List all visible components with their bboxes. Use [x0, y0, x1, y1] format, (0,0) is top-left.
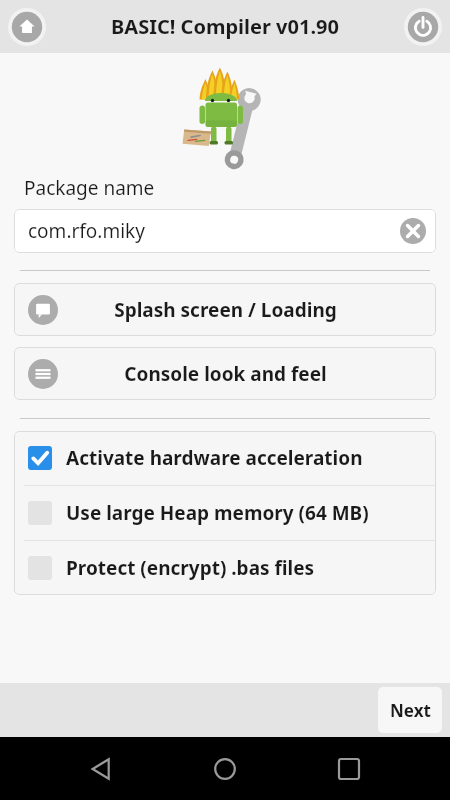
button[interactable]: Activate hardware acceleration — [14, 431, 436, 485]
button[interactable]: Use large Heap memory (64 MB) — [14, 486, 436, 540]
button[interactable]: Exit — [402, 6, 444, 48]
staticText: Package name — [24, 175, 155, 201]
staticText: Next — [390, 699, 431, 722]
button[interactable]: Protect (encrypt) .bas files — [14, 541, 436, 595]
staticText: Splash screen / Loading — [114, 297, 337, 323]
staticText: Use large Heap memory (64 MB) — [66, 500, 369, 526]
button[interactable]: Next — [378, 687, 442, 733]
button[interactable]: Clear text — [400, 218, 426, 244]
button[interactable]: Recent apps — [328, 748, 370, 790]
staticText: Console look and feel — [124, 361, 327, 387]
button[interactable]: Back — [80, 748, 122, 790]
staticText: BASIC! Compiler v01.90 — [111, 13, 339, 40]
button[interactable]: Splash screen / Loading — [14, 283, 436, 336]
button[interactable]: com.rfo.miky — [14, 209, 436, 253]
button[interactable]: Home — [6, 6, 48, 48]
staticText: Protect (encrypt) .bas files — [66, 555, 315, 581]
staticText: Activate hardware acceleration — [66, 445, 363, 471]
button[interactable]: Home — [204, 748, 246, 790]
button[interactable]: Console look and feel — [14, 347, 436, 400]
staticText: com.rfo.miky — [28, 218, 145, 244]
